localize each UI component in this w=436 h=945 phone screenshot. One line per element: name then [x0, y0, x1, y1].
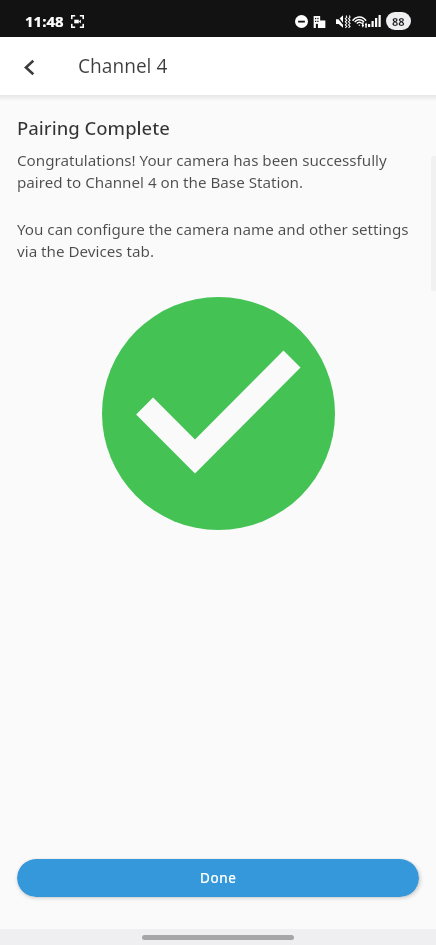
- button[interactable]: Back: [0, 37, 58, 95]
- staticText: Congratulations! Your camera has been su…: [17, 150, 406, 193]
- staticText: Done: [200, 869, 237, 887]
- staticText: Channel 4: [78, 53, 168, 79]
- staticText: 88: [392, 14, 405, 29]
- staticText: You can configure the camera name and ot…: [17, 219, 422, 262]
- button[interactable]: Done: [17, 859, 419, 897]
- staticText: Pairing Complete: [17, 115, 170, 140]
- staticText: 11:48: [25, 11, 64, 31]
